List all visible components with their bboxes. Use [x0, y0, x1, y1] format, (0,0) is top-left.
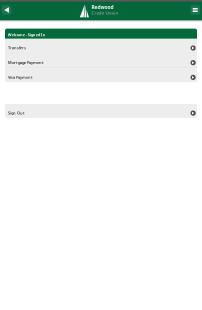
- staticText: Transfers: [8, 45, 26, 50]
- button[interactable]: Mortgage Payment: [5, 53, 197, 67]
- button[interactable]: Transfers: [5, 39, 197, 53]
- staticText: Credit Union: [91, 10, 118, 16]
- button[interactable]: Back: [2, 5, 11, 15]
- staticText: Welcome - Signed In: [8, 32, 46, 37]
- button[interactable]: Sign Out: [5, 104, 197, 118]
- staticText: Redwood: [91, 4, 113, 10]
- staticText: Visa Payment: [8, 74, 33, 80]
- button[interactable]: Visa Payment: [5, 68, 197, 82]
- staticText: Mortgage Payment: [8, 60, 44, 65]
- button[interactable]: Menu: [190, 5, 200, 15]
- staticText: Sign Out: [8, 110, 25, 116]
